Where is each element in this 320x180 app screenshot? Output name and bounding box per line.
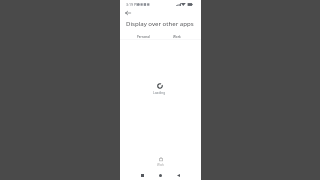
button[interactable]: Personal (127, 32, 160, 41)
button[interactable]: Home (155, 170, 166, 180)
staticText: Display over other apps (126, 19, 194, 27)
staticText: Work (173, 35, 181, 39)
button[interactable]: Navigate up (122, 7, 133, 18)
button[interactable]: Work (157, 157, 165, 167)
button[interactable]: Work (160, 32, 194, 41)
staticText: 3:19 PM (126, 2, 140, 7)
button[interactable]: Back (173, 170, 184, 180)
button[interactable]: Recents (137, 170, 148, 180)
staticText: Loading (153, 91, 166, 95)
staticText: Personal (137, 35, 150, 39)
staticText: Work (157, 163, 165, 167)
